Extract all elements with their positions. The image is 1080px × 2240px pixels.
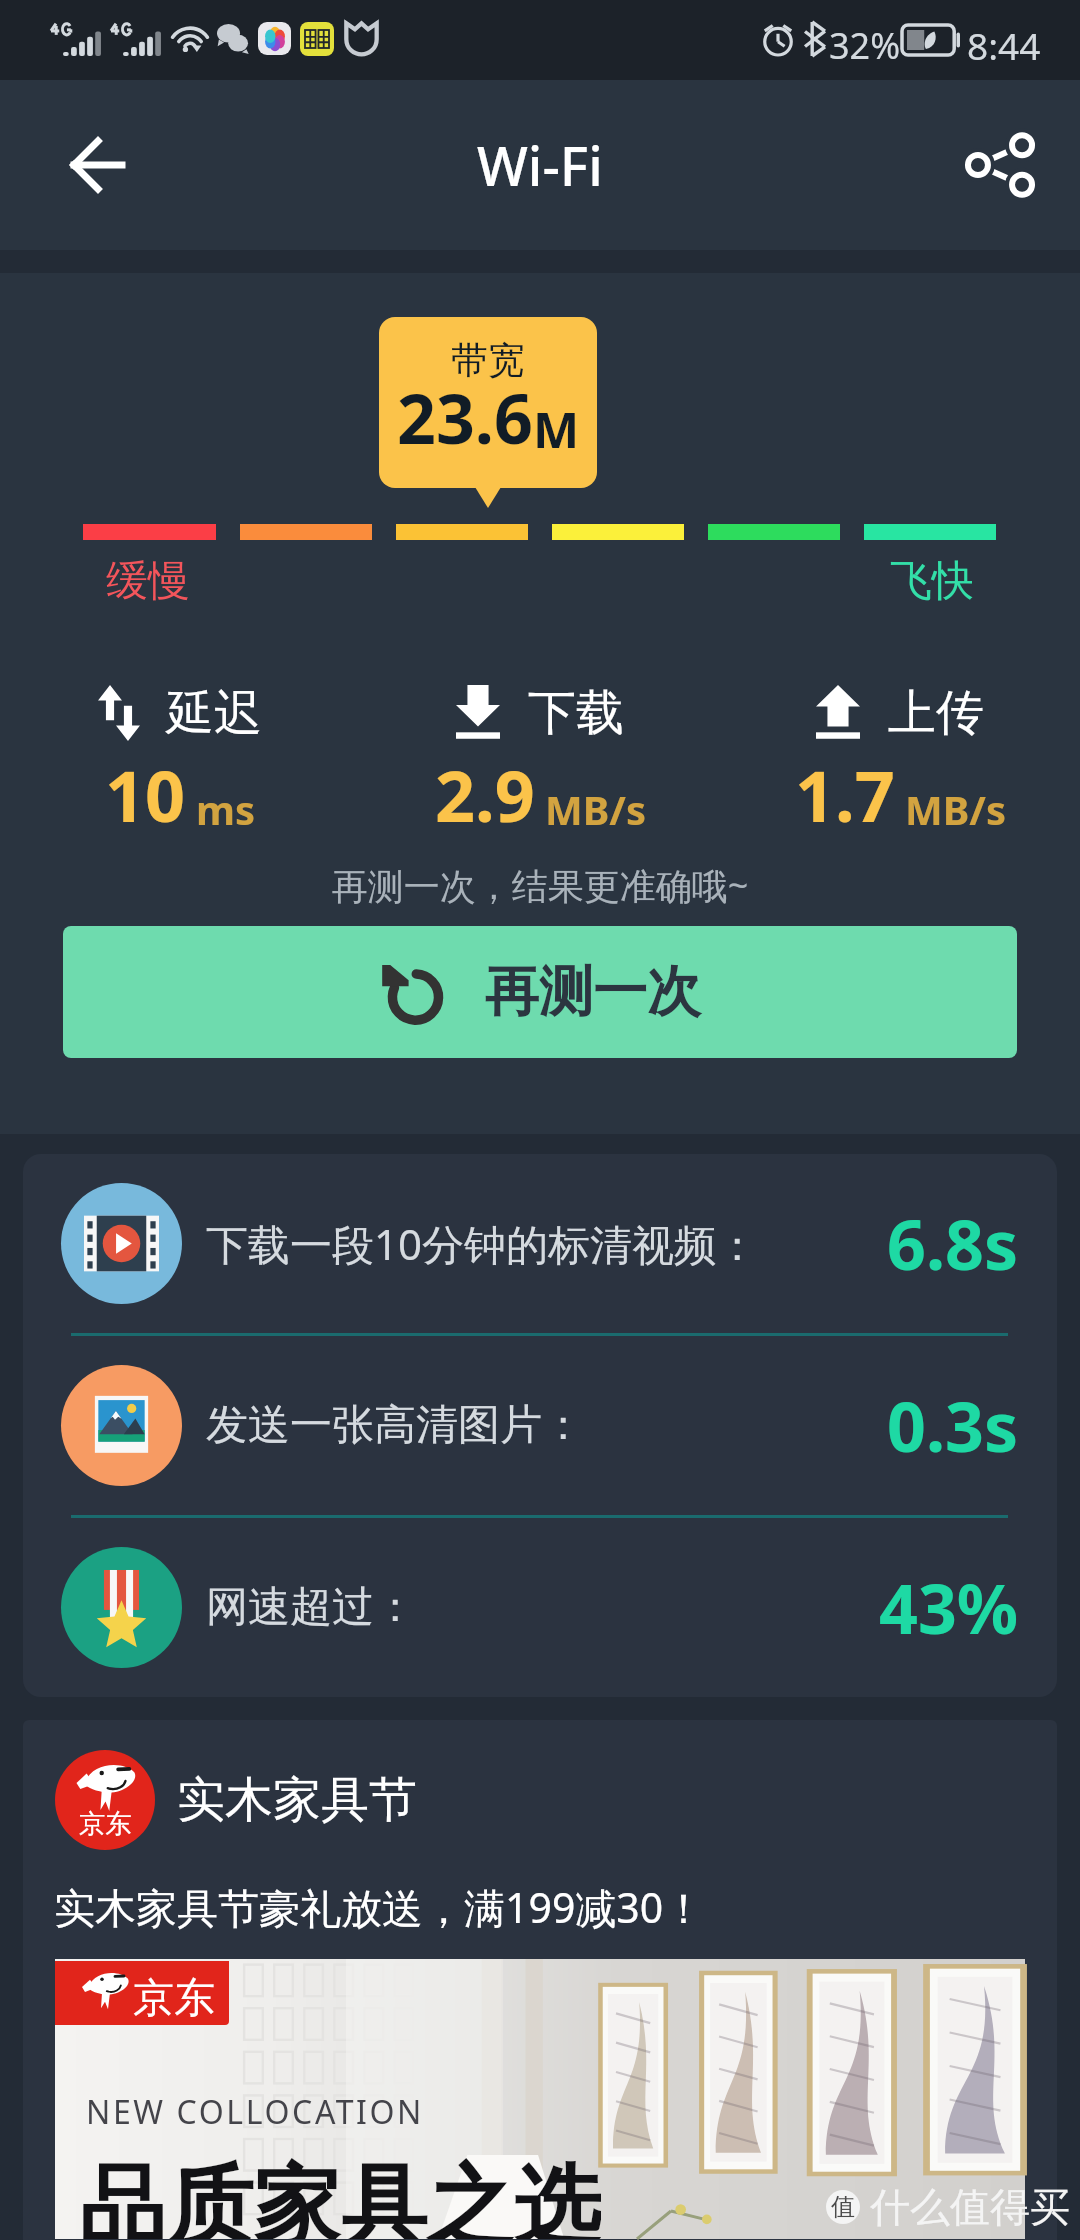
staticText: 缓慢 [106,555,190,608]
button[interactable]: Share [948,113,1052,217]
button[interactable]: 发送一张高清图片： [23,1336,1057,1515]
staticText: Wi-Fi [477,128,603,202]
staticText: 32% [829,21,901,70]
staticText: 10 [105,747,186,842]
staticText: 上传 [888,683,984,743]
staticText: 2.9 [435,747,535,842]
staticText: 下载 [528,683,624,743]
staticText: 实木家具节 [177,1770,417,1830]
staticText: 值 [831,2192,855,2222]
staticText: 带宽 [451,337,525,384]
staticText: 发送一张高清图片： [206,1399,584,1452]
staticText: 8:44 [967,20,1041,70]
staticText: 延迟 [166,683,262,743]
staticText: 什么值得买 [870,2182,1070,2232]
button[interactable]: Back [46,113,150,217]
staticText: 网速超过： [206,1581,416,1634]
staticText: 再测一次 [485,958,701,1026]
staticText: 京东 [79,1807,132,1840]
staticText: MB/s [545,782,646,836]
staticText: NEW COLLOCATION [86,2090,425,2134]
staticText: M [533,396,580,463]
staticText: 23.6 [397,371,533,464]
button[interactable]: 下载一段10分钟的标清视频： [23,1154,1057,1333]
staticText: MB/s [905,782,1006,836]
staticText: 6.8s [887,1197,1019,1290]
staticText: 再测一次，结果更准确哦~ [0,861,1080,910]
staticText: 1.7 [795,747,895,842]
button[interactable]: 京东 [55,1959,1025,2239]
staticText: 京东 [133,1973,215,2025]
button[interactable]: 京东 [23,1750,1057,1850]
staticText: 飞快 [890,555,974,608]
staticText: 品质家具之选 [79,2152,601,2239]
staticText: 实木家具节豪礼放送，满199减30！ [54,1879,705,1935]
button[interactable]: 网速超过： [23,1518,1057,1697]
staticText: 下载一段10分钟的标清视频： [206,1215,759,1272]
staticText: 0.3s [887,1379,1019,1472]
staticText: ms [196,782,256,836]
staticText: 43% [879,1561,1019,1654]
button[interactable]: 再测一次 [63,926,1017,1058]
